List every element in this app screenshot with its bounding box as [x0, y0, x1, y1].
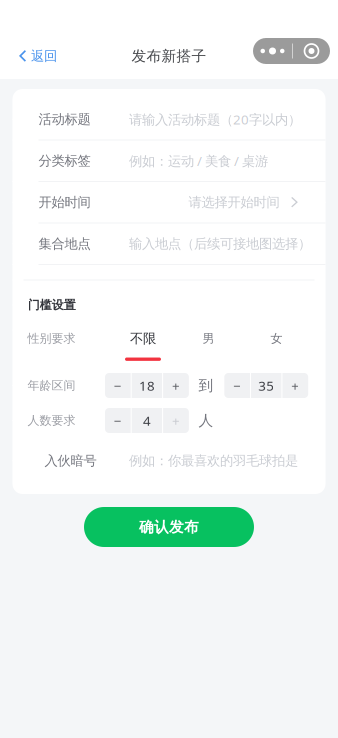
button[interactable]: 返回 — [0, 40, 69, 72]
button[interactable]: 减少 — [105, 408, 131, 433]
button[interactable]: 入伙暗号 — [12, 440, 325, 481]
staticText: + — [291, 377, 299, 394]
staticText: + — [172, 377, 180, 394]
staticText: 输入地点（后续可接地图选择） — [129, 236, 311, 252]
staticText: 分类标签 — [38, 153, 90, 169]
staticText: 到 — [198, 376, 213, 394]
button[interactable]: 减少 — [105, 373, 131, 398]
staticText: 入伙暗号 — [44, 453, 96, 469]
staticText: − — [114, 377, 122, 394]
button[interactable]: 开始时间 — [12, 182, 325, 222]
staticText: 确认发布 — [139, 518, 199, 536]
button[interactable]: 男 — [174, 329, 242, 367]
staticText: 性别要求 — [27, 331, 75, 346]
button[interactable]: 女 — [242, 329, 310, 367]
staticText: + — [172, 412, 180, 429]
staticText: 不限 — [130, 330, 156, 347]
staticText: 活动标题 — [38, 111, 90, 127]
staticText: 例如：你最喜欢的羽毛球拍是 — [129, 453, 298, 469]
button[interactable]: 增加 — [282, 373, 308, 398]
button[interactable]: 集合地点 — [12, 223, 325, 264]
button[interactable]: 增加 — [163, 373, 189, 398]
staticText: 例如：运动 / 美食 / 桌游 — [129, 152, 268, 170]
staticText: 女 — [270, 331, 282, 346]
staticText: 18 — [139, 377, 155, 394]
staticText: 请选择开始时间 — [188, 194, 279, 210]
button[interactable]: 减少 — [224, 373, 250, 398]
staticText: 35 — [258, 377, 274, 394]
staticText: 年龄区间 — [27, 378, 75, 393]
staticText: 返回 — [31, 48, 57, 64]
staticText: 男 — [202, 331, 214, 346]
staticText: 请输入活动标题（20字以内） — [129, 110, 301, 128]
staticText: 发布新搭子 — [131, 47, 206, 65]
staticText: 4 — [143, 412, 151, 429]
button[interactable]: 不限 — [111, 329, 174, 367]
button[interactable]: 确认发布 — [84, 507, 254, 547]
staticText: 开始时间 — [38, 194, 90, 210]
button[interactable]: 分类标签 — [12, 140, 325, 181]
button[interactable]: 菜单 — [253, 38, 330, 64]
button[interactable]: 增加 — [163, 408, 189, 433]
staticText: 人 — [198, 411, 213, 429]
staticText: 门槛设置 — [28, 298, 76, 312]
staticText: 集合地点 — [38, 236, 90, 252]
staticText: − — [114, 412, 122, 429]
button[interactable]: 活动标题 — [12, 99, 325, 139]
staticText: 人数要求 — [27, 413, 75, 428]
staticText: − — [233, 377, 241, 394]
